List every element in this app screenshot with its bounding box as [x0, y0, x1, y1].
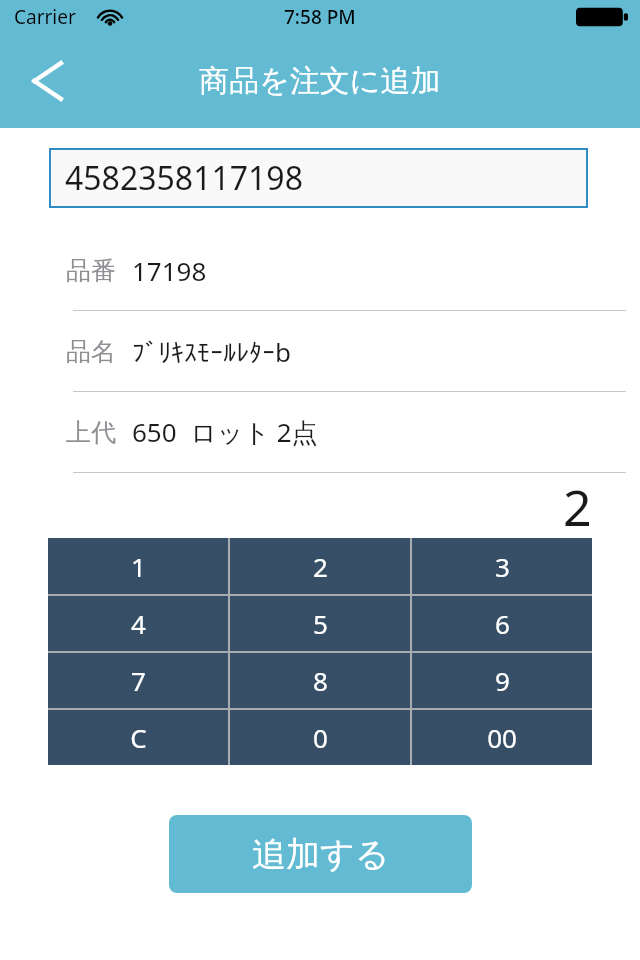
button[interactable]: 1 — [48, 538, 228, 594]
staticText: 品番 — [66, 255, 116, 286]
button[interactable]: 8 — [230, 653, 410, 708]
staticText: 2 — [313, 549, 328, 584]
staticText: C — [130, 720, 147, 755]
staticText: 4582358117198 — [65, 156, 303, 200]
button[interactable]: 追加する — [169, 815, 472, 893]
staticText: 7 — [131, 663, 146, 698]
staticText: 商品を注文に追加 — [199, 62, 441, 100]
staticText: 9 — [495, 663, 510, 698]
staticText: 17198 — [132, 253, 207, 288]
button[interactable]: 4582358117198 — [49, 148, 588, 208]
staticText: 2 — [563, 473, 592, 538]
staticText: ﾌﾞﾘｷｽﾓｰﾙﾚﾀｰb — [132, 334, 291, 369]
button[interactable]: 6 — [412, 596, 592, 651]
staticText: 追加する — [252, 833, 390, 876]
staticText: 1 — [131, 549, 146, 584]
button[interactable]: 00 — [412, 710, 592, 765]
button[interactable]: 5 — [230, 596, 410, 651]
staticText: 6 — [495, 606, 510, 641]
staticText: 650 ロット 2点 — [132, 414, 318, 450]
staticText: 3 — [495, 549, 510, 584]
staticText: 7:58 PM — [284, 4, 356, 30]
staticText: Carrier — [14, 4, 76, 30]
staticText: 00 — [487, 720, 517, 755]
button[interactable]: Back — [22, 54, 76, 108]
button[interactable]: 7 — [48, 653, 228, 708]
button[interactable]: 2 — [230, 538, 410, 594]
staticText: 5 — [313, 606, 328, 641]
button[interactable]: C — [48, 710, 228, 765]
button[interactable]: 3 — [412, 538, 592, 594]
staticText: 品名 — [66, 336, 116, 367]
button[interactable]: 4 — [48, 596, 228, 651]
staticText: 上代 — [66, 417, 116, 448]
staticText: 0 — [313, 720, 328, 755]
button[interactable]: 0 — [230, 710, 410, 765]
staticText: 8 — [313, 663, 328, 698]
button[interactable]: 9 — [412, 653, 592, 708]
staticText: 4 — [131, 606, 146, 641]
